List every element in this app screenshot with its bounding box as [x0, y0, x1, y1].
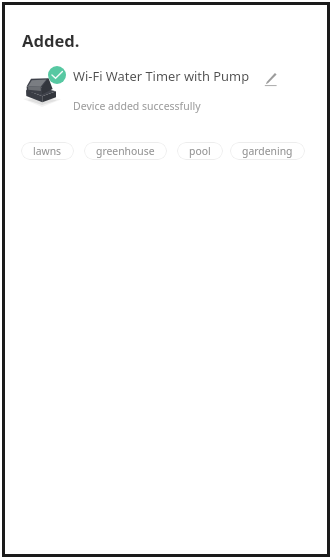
button[interactable]: lawns [21, 142, 74, 160]
staticText: Added. [22, 29, 80, 52]
button[interactable]: gardening [230, 142, 305, 160]
staticText: greenhouse [96, 144, 155, 158]
staticText: Device added successfully [73, 99, 201, 113]
button[interactable] [16, 62, 316, 116]
button[interactable]: Edit device name [264, 72, 278, 86]
button[interactable]: greenhouse [84, 142, 167, 160]
button[interactable]: pool [177, 142, 223, 160]
staticText: Wi-Fi Water Timer with Pump [73, 67, 250, 85]
staticText: lawns [33, 144, 62, 158]
staticText: pool [189, 144, 211, 158]
staticText: gardening [242, 144, 293, 158]
